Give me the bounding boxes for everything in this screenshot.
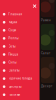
staticText: Пицца: [9, 53, 19, 56]
button[interactable]: Акции: [0, 18, 39, 26]
button[interactable]: Суши: [0, 26, 39, 34]
staticText: Сеты: [9, 45, 16, 48]
button[interactable]: Роллы: [0, 34, 39, 42]
staticText: Роллы: [9, 37, 19, 40]
staticText: Салаты: [9, 69, 20, 72]
button[interactable]: Закрыть меню: [31, 3, 38, 10]
staticText: Салат: [41, 51, 50, 55]
button[interactable]: Главная: [0, 10, 39, 18]
button[interactable]: Супы: [0, 58, 39, 67]
button[interactable]: Горячие блюда: [0, 75, 39, 83]
staticText: Горячие блюда: [9, 77, 33, 80]
staticText: Суши: [9, 29, 17, 32]
button[interactable]: Сеты: [0, 42, 39, 50]
staticText: Десерты: [9, 85, 22, 88]
button[interactable]: Салат: [41, 24, 54, 55]
staticText: Рамен: [41, 18, 51, 22]
button[interactable]: Рамен: [41, 0, 54, 22]
staticText: Главная: [9, 13, 23, 16]
staticText: Напитки: [9, 93, 21, 96]
staticText: Супы: [9, 61, 17, 64]
button[interactable]: Салаты: [0, 66, 39, 75]
button[interactable]: Десерт: [41, 57, 54, 88]
staticText: Десерт: [41, 84, 52, 88]
button[interactable]: Десерты: [0, 83, 39, 91]
button[interactable]: Напитки: [0, 91, 39, 99]
button[interactable]: Пицца: [0, 50, 39, 59]
staticText: Акции: [9, 21, 18, 24]
